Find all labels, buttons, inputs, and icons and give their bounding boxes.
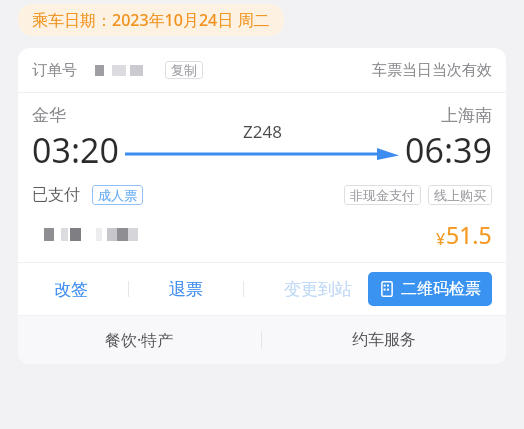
button[interactable]: 变更到站: [276, 273, 360, 306]
staticText: 金华: [32, 105, 66, 126]
staticText: 成人票: [98, 187, 137, 203]
button[interactable]: 线上购买: [428, 185, 492, 205]
button[interactable]: QR code ticket check: [368, 272, 492, 306]
staticText: 06:39: [405, 127, 492, 173]
staticText: 复制: [171, 62, 197, 78]
button[interactable]: 改签: [46, 273, 96, 306]
staticText: 51.5: [446, 219, 492, 250]
staticText: 乘车日期：2023年10月24日 周二: [32, 9, 270, 31]
staticText: 退票: [169, 279, 203, 300]
staticText: 二维码检票: [401, 279, 481, 299]
staticText: 订单号: [32, 61, 77, 80]
button[interactable]: 约车服务: [262, 316, 506, 364]
staticText: 已支付: [32, 185, 80, 205]
button[interactable]: 成人票: [92, 185, 143, 205]
staticText: 03:20: [32, 127, 119, 173]
staticText: 线上购买: [434, 187, 486, 203]
staticText: 车票当日当次有效: [372, 61, 492, 80]
staticText: Z248: [243, 120, 282, 143]
staticText: 变更到站: [284, 279, 352, 300]
staticText: 非现金支付: [350, 187, 415, 203]
staticText: 餐饮·特产: [105, 329, 174, 351]
button[interactable]: 退票: [161, 273, 211, 306]
button[interactable]: 非现金支付: [344, 185, 421, 205]
button[interactable]: 复制: [165, 61, 203, 79]
button[interactable]: 乘车日期：2023年10月24日 周二: [18, 4, 284, 36]
staticText: 改签: [54, 279, 88, 300]
staticText: 上海南: [441, 105, 492, 126]
button[interactable]: 餐饮·特产: [18, 316, 261, 364]
staticText: 约车服务: [352, 330, 416, 350]
staticText: ¥: [436, 228, 446, 250]
other: QR code ticket check: [379, 281, 395, 297]
